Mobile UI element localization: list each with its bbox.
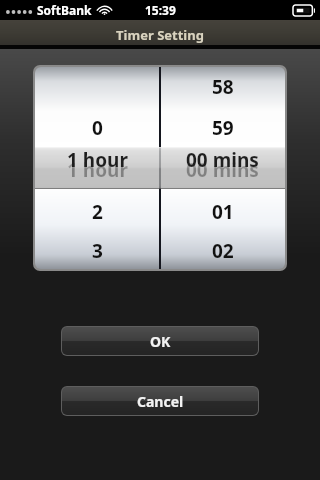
button[interactable]: Cancel — [62, 387, 258, 415]
button[interactable]: Minutes wheel — [160, 67, 285, 269]
staticText: 58 — [212, 74, 234, 100]
staticText: SoftBank — [37, 2, 92, 18]
staticText: 00 mins — [186, 147, 259, 173]
staticText: 1 hour — [67, 157, 128, 183]
staticText: 15:39 — [145, 2, 176, 18]
staticText: 02 — [212, 238, 234, 264]
staticText: 00 mins — [186, 157, 259, 183]
staticText: 01 — [212, 199, 234, 225]
button[interactable]: OK — [62, 327, 258, 355]
button[interactable]: Hours wheel — [35, 67, 160, 269]
staticText: 1 hour — [67, 147, 128, 173]
staticText: 59 — [212, 115, 234, 141]
staticText: OK — [150, 332, 171, 351]
staticText: Cancel — [137, 392, 184, 411]
staticText: 2 — [92, 199, 103, 225]
staticText: 3 — [92, 238, 103, 264]
staticText: 0 — [92, 115, 103, 141]
staticText: Timer Setting — [116, 26, 204, 44]
